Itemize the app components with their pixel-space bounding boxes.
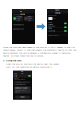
staticText: Open the wallet and hold the device near…	[6, 63, 60, 65]
staticText: Done	[20, 96, 24, 98]
staticText: Digital Cards	[20, 7, 27, 15]
staticText: Auto reload	[48, 21, 53, 25]
staticText: Once the card has been added to the wall…	[3, 46, 76, 57]
button[interactable]: Manage cards	[13, 27, 34, 31]
button[interactable]: Bank Card	[24, 16, 34, 21]
button[interactable]: Done	[15, 96, 30, 98]
staticText: Active	[27, 20, 31, 21]
staticText: Active	[16, 20, 20, 21]
button[interactable]: Auto reload	[47, 21, 68, 25]
staticText: Notify me	[48, 30, 55, 32]
staticText: Bank Card	[27, 15, 31, 20]
staticText: Manage cards	[13, 28, 24, 30]
staticText: Update card	[48, 34, 58, 36]
staticText: 1x	[53, 17, 55, 20]
staticText: SELECTED	[48, 14, 56, 16]
staticText: Add a new card	[13, 23, 24, 26]
button[interactable]: Express mode	[47, 25, 68, 29]
staticText: Transit Pay	[16, 15, 21, 20]
staticText: When this option is enabled the card is …	[14, 78, 30, 85]
button[interactable]: Notify me	[47, 29, 68, 33]
staticText: Hold near reader	[15, 87, 28, 89]
staticText: Use this card	[14, 73, 18, 79]
staticText: Card Setup	[55, 8, 60, 14]
button[interactable]: Add a new card	[13, 22, 34, 27]
staticText: MY CARDS	[13, 14, 20, 16]
staticText: Keep the device steady	[15, 89, 26, 93]
staticText: Settings	[21, 67, 24, 78]
button[interactable]: Transit Pay	[13, 16, 23, 21]
staticText: 4. Using the card	[3, 59, 21, 62]
staticText: Wait for the confirmation before removin…	[6, 66, 53, 68]
staticText: Express mode	[48, 25, 55, 29]
button[interactable]: Use this card	[13, 74, 32, 78]
